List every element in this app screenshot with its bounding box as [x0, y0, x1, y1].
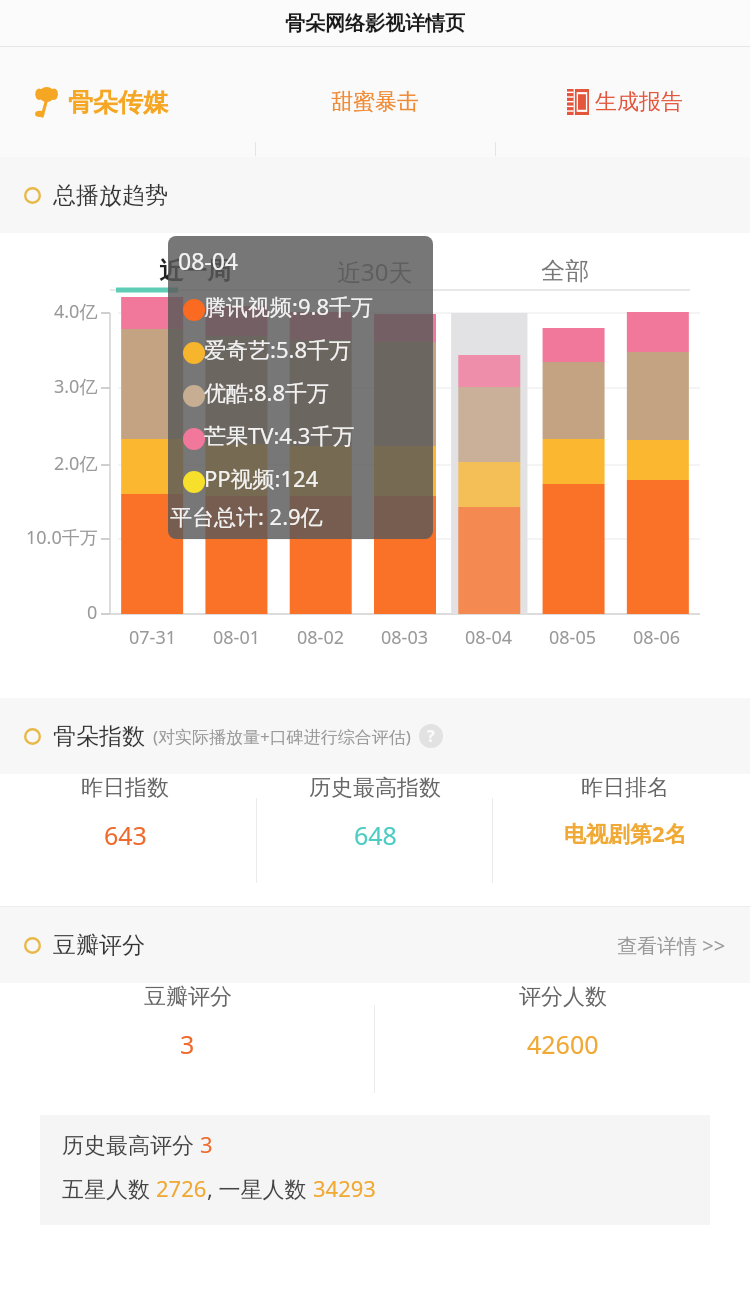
button[interactable]: 评分人数: [375, 983, 750, 1061]
staticText: 近一周: [159, 256, 231, 286]
button[interactable]: 历史最高指数: [250, 774, 500, 852]
staticText: 3: [180, 1027, 195, 1061]
button[interactable]: 查看详情 >>: [617, 932, 726, 959]
staticText: 近30天: [337, 255, 413, 288]
staticText: 评分人数: [519, 983, 607, 1011]
button[interactable]: 豆瓣评分: [0, 983, 375, 1061]
staticText: 2726: [156, 1173, 207, 1203]
staticText: 昨日排名: [581, 774, 669, 802]
staticText: ?: [427, 725, 435, 747]
staticText: 五星人数: [62, 1173, 156, 1203]
staticText: 08-06: [633, 625, 680, 650]
staticText: 电视剧第2名: [564, 818, 687, 848]
staticText: 历史最高评分: [62, 1129, 200, 1159]
staticText: 643: [104, 818, 147, 852]
staticText: 生成报告: [595, 88, 683, 116]
staticText: 昨日指数: [81, 774, 169, 802]
button[interactable]: 全部: [470, 243, 660, 299]
staticText: 10.0千万: [26, 525, 98, 550]
staticText: 08-02: [297, 625, 344, 650]
staticText: 08-03: [381, 625, 428, 650]
staticText: 骨朵网络影视详情页: [285, 11, 465, 36]
staticText: 07-31: [129, 625, 176, 650]
staticText: 08-05: [549, 625, 596, 650]
staticText: 42600: [527, 1027, 599, 1061]
staticText: 08-01: [213, 625, 260, 650]
staticText: 3: [200, 1129, 213, 1159]
button[interactable]: 甜蜜暴击: [250, 88, 500, 116]
staticText: 648: [354, 818, 397, 852]
staticText: 全部: [541, 256, 589, 286]
button[interactable]: 说明: [419, 724, 443, 748]
staticText: 骨朵传媒: [68, 87, 168, 118]
staticText: 腾讯视频:9.8千万: [204, 291, 373, 321]
staticText: 平台总计: 2.9亿: [170, 501, 323, 531]
staticText: PP视频:124: [204, 463, 319, 493]
staticText: 08-04: [465, 625, 512, 650]
staticText: 总播放趋势: [53, 181, 168, 210]
staticText: 3.0亿: [54, 374, 98, 399]
button[interactable]: 昨日排名: [500, 774, 750, 848]
staticText: (对实际播放量+口碑进行综合评估): [153, 725, 411, 748]
staticText: 08-04: [178, 245, 239, 276]
staticText: 芒果TV:4.3千万: [204, 420, 355, 450]
staticText: , 一星人数: [207, 1173, 313, 1203]
staticText: 34293: [313, 1173, 376, 1203]
staticText: 豆瓣评分: [144, 983, 232, 1011]
staticText: 豆瓣评分: [53, 931, 145, 960]
staticText: 历史最高指数: [309, 774, 441, 802]
staticText: 0: [87, 600, 98, 625]
staticText: 优酷:8.8千万: [204, 377, 329, 407]
staticText: 甜蜜暴击: [331, 88, 419, 116]
button[interactable]: 近一周: [110, 243, 280, 299]
staticText: 爱奇艺:5.8千万: [204, 334, 351, 364]
staticText: 4.0亿: [54, 299, 98, 324]
staticText: 骨朵指数: [53, 722, 145, 751]
staticText: 查看详情 >>: [617, 932, 726, 959]
button[interactable]: 昨日指数: [0, 774, 250, 852]
button[interactable]: 生成报告: [500, 88, 750, 116]
staticText: 2.0亿: [54, 451, 98, 476]
button[interactable]: 近30天: [280, 243, 470, 299]
button[interactable]: 骨朵传媒: [34, 85, 250, 119]
